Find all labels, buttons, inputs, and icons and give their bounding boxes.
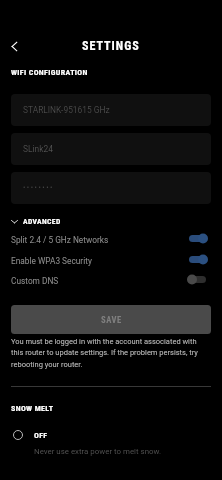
staticText: Never use extra power to melt snow.: [34, 447, 162, 456]
staticText: SAVE: [101, 315, 122, 325]
button[interactable]: ADVANCED: [0, 215, 222, 228]
button[interactable]: Custom DNS: [0, 271, 222, 291]
button[interactable]: OFF: [0, 428, 222, 442]
staticText: WIFI CONFIGURATION: [11, 68, 88, 77]
button[interactable]: STARLINK-951615 GHz: [11, 94, 211, 126]
staticText: ADVANCED: [23, 217, 61, 226]
button[interactable]: SAVE: [11, 305, 211, 334]
staticText: Custom DNS: [11, 276, 59, 286]
staticText: OFF: [34, 431, 48, 440]
button[interactable]: Back: [3, 35, 25, 57]
staticText: You must be logged in with the account a…: [11, 337, 209, 369]
button[interactable]: Split 2.4 / 5 GHz Networks: [0, 230, 222, 250]
button[interactable]: Enable WPA3 Security: [0, 251, 222, 271]
staticText: Split 2.4 / 5 GHz Networks: [11, 235, 109, 245]
button[interactable]: SLink24: [11, 133, 211, 165]
staticText: SLink24: [23, 144, 53, 154]
staticText: STARLINK-951615 GHz: [23, 105, 110, 115]
staticText: Enable WPA3 Security: [11, 256, 92, 266]
staticText: SNOW MELT: [11, 404, 54, 413]
staticText: SETTINGS: [82, 39, 140, 53]
staticText: ••••••••: [23, 184, 54, 192]
